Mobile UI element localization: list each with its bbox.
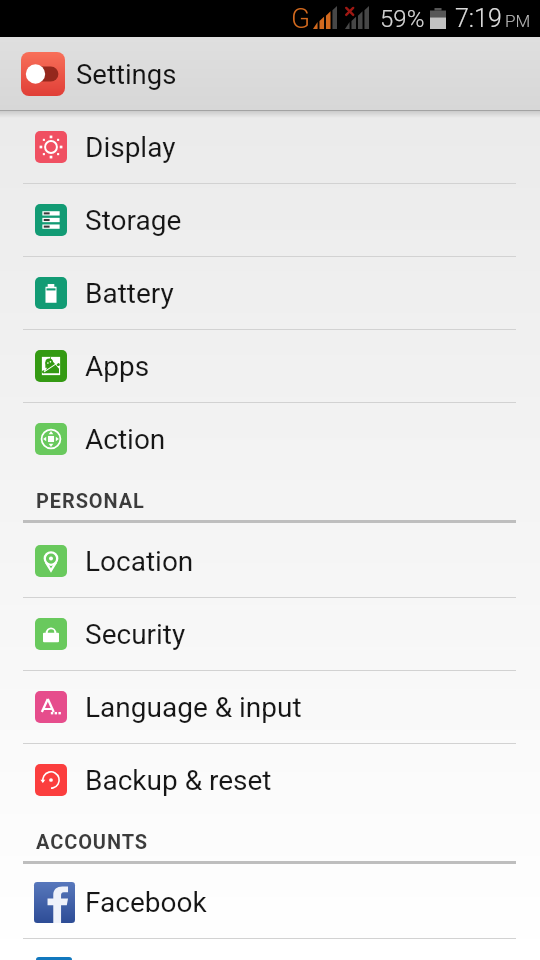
button[interactable]: Settings [0,37,540,110]
staticText: PERSONAL [36,489,145,512]
staticText: Battery [85,277,174,310]
staticText: Facebook [85,886,207,919]
button[interactable]: Facebook [0,866,540,938]
staticText: Action [85,423,166,456]
staticText: 7:19 [455,4,502,33]
button[interactable]: Action [0,403,540,475]
button[interactable]: Storage [0,184,540,256]
staticText: Security [85,618,186,651]
staticText: PM [505,11,531,31]
staticText: Location [85,545,194,578]
staticText: Backup & reset [85,764,272,797]
staticText: Settings [76,58,177,90]
staticText: Display [85,131,176,164]
button[interactable]: Language & input [0,671,540,743]
button[interactable]: Security [0,598,540,670]
button[interactable]: Apps [0,330,540,402]
button[interactable]: Battery [0,257,540,329]
staticText: Language & input [85,691,302,724]
button[interactable]: Backup & reset [0,744,540,816]
staticText: 59% [380,5,425,33]
staticText: G [291,2,311,35]
button[interactable]: Display [0,111,540,183]
staticText: Storage [85,204,182,237]
button[interactable]: Location [0,525,540,597]
staticText: Apps [85,350,150,383]
button[interactable]: Account [0,939,540,960]
staticText: ACCOUNTS [36,830,148,853]
